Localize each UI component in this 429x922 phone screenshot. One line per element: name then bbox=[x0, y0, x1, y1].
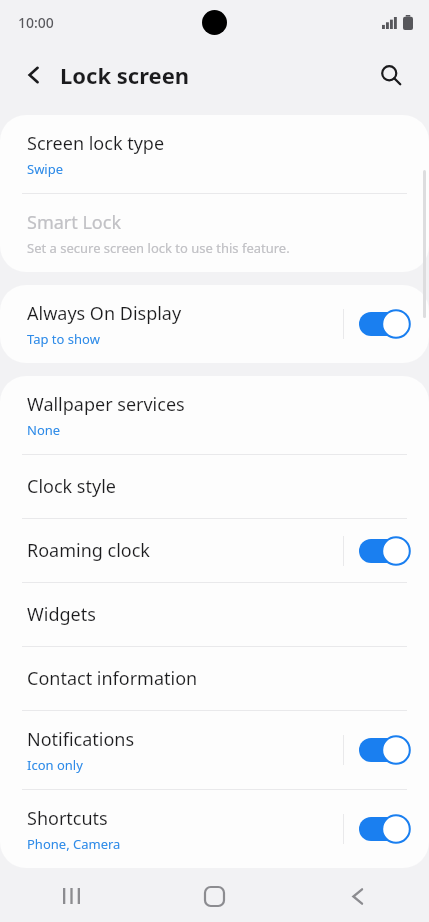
button[interactable]: Back bbox=[286, 870, 429, 922]
button[interactable]: Widgets bbox=[0, 583, 429, 646]
staticText: Wallpaper services bbox=[27, 392, 185, 417]
staticText: Widgets bbox=[27, 602, 96, 627]
button[interactable]: Screen lock type bbox=[0, 115, 429, 193]
staticText: Always On Display bbox=[27, 301, 182, 326]
staticText: Screen lock type bbox=[27, 131, 165, 156]
staticText: Roaming clock bbox=[27, 538, 150, 563]
button[interactable]: Clock style bbox=[0, 455, 429, 518]
button[interactable]: Home bbox=[143, 870, 286, 922]
staticText: Smart Lock bbox=[27, 210, 121, 235]
staticText: Lock screen bbox=[60, 60, 190, 90]
staticText: Icon only bbox=[27, 756, 83, 774]
button[interactable]: Navigate up bbox=[12, 53, 56, 97]
button[interactable]: Toggle setting bbox=[359, 814, 411, 844]
button[interactable]: Always On Display bbox=[0, 285, 429, 363]
staticText: Shortcuts bbox=[27, 806, 108, 831]
staticText: Phone, Camera bbox=[27, 835, 121, 853]
button[interactable]: Toggle setting bbox=[359, 309, 411, 339]
button[interactable]: Toggle setting bbox=[359, 536, 411, 566]
staticText: Contact information bbox=[27, 666, 198, 691]
staticText: None bbox=[27, 421, 61, 439]
button[interactable]: Roaming clock bbox=[0, 519, 429, 582]
button[interactable]: Toggle setting bbox=[359, 735, 411, 765]
button[interactable]: Shortcuts bbox=[0, 790, 429, 868]
button[interactable]: Wallpaper services bbox=[0, 376, 429, 454]
staticText: 10:00 bbox=[18, 13, 54, 32]
button[interactable]: Notifications bbox=[0, 711, 429, 789]
staticText: Set a secure screen lock to use this fea… bbox=[27, 239, 290, 257]
staticText: Notifications bbox=[27, 727, 135, 752]
button[interactable]: Search bbox=[369, 53, 413, 97]
button[interactable]: Contact information bbox=[0, 647, 429, 710]
staticText: Swipe bbox=[27, 160, 64, 178]
button[interactable]: Smart Lock bbox=[0, 194, 429, 272]
staticText: Clock style bbox=[27, 474, 116, 499]
staticText: Tap to show bbox=[27, 330, 100, 348]
button[interactable]: Recent apps bbox=[0, 870, 143, 922]
